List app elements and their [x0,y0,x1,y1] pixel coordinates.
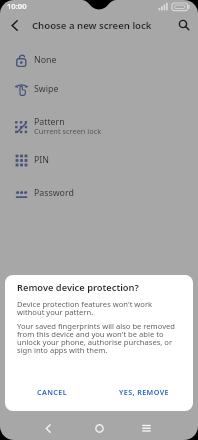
staticText: PIN [34,154,49,166]
button[interactable] [36,416,60,440]
staticText: Swipe [34,83,59,95]
staticText: Password [34,187,74,199]
staticText: 10:00 [7,1,27,11]
staticText: Current screen lock [34,126,102,136]
staticText: CANCEL [37,387,68,397]
staticText: YES, REMOVE [119,387,170,397]
button[interactable] [4,14,26,36]
button[interactable]: None [0,48,198,72]
button[interactable] [134,416,159,440]
staticText: Pattern [34,116,65,128]
button[interactable]: PIN [0,148,198,172]
button[interactable] [172,14,196,36]
button[interactable]: Pattern [0,111,198,143]
button[interactable]: Swipe [0,77,198,101]
staticText: Device protection features won't work wi… [17,299,153,318]
button[interactable]: Password [0,181,198,205]
staticText: Your saved fingerprints will also be rem… [17,321,175,356]
staticText: None [34,54,57,66]
staticText: Choose a new screen lock [32,19,152,32]
button[interactable] [87,416,111,440]
staticText: Remove device protection? [17,281,139,294]
button[interactable]: YES, REMOVE [110,383,178,401]
button[interactable]: CANCEL [23,383,81,401]
